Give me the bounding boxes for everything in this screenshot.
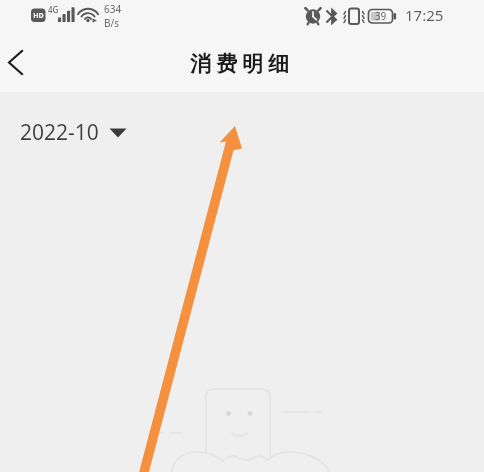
staticText: 634 bbox=[104, 2, 122, 16]
staticText: 消费明细 bbox=[0, 51, 484, 77]
staticText: 39 bbox=[370, 9, 391, 23]
button[interactable]: Back bbox=[0, 40, 44, 84]
staticText: 4G bbox=[48, 4, 59, 15]
staticText: 2022-10 bbox=[20, 118, 99, 147]
staticText: B/s bbox=[104, 16, 120, 30]
staticText: 17:25 bbox=[405, 5, 444, 25]
button[interactable]: 2022-10 bbox=[12, 112, 125, 153]
staticText: HD bbox=[31, 11, 46, 21]
